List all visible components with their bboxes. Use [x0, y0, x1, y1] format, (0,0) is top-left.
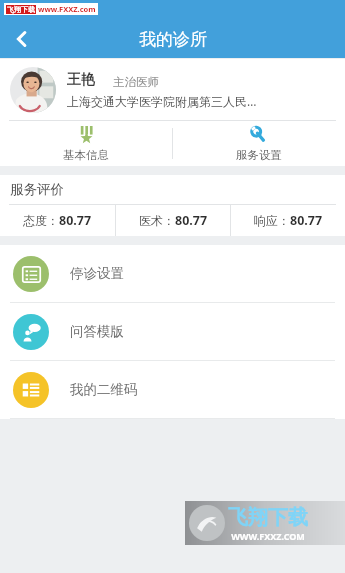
- staticText: 停诊设置: [70, 265, 124, 282]
- staticText: 基本信息: [63, 148, 109, 162]
- staticText: WWW.FXXZ.COM: [231, 530, 305, 542]
- button[interactable]: 服务设置: [173, 121, 345, 166]
- staticText: 80.77: [59, 212, 92, 229]
- staticText: 王艳: [67, 71, 95, 89]
- staticText: 服务设置: [236, 148, 282, 162]
- staticText: www.FXXZ.com: [38, 4, 96, 14]
- staticText: 问答模版: [70, 323, 124, 340]
- staticText: 态度：: [23, 213, 59, 228]
- button[interactable]: 我的二维码: [0, 361, 345, 418]
- staticText: 我的二维码: [70, 381, 138, 398]
- staticText: 我的诊所: [139, 29, 207, 50]
- button[interactable]: 问答模版: [0, 303, 345, 360]
- staticText: 飞翔下载: [7, 5, 35, 14]
- staticText: 主治医师: [113, 75, 159, 89]
- staticText: 服务评价: [10, 181, 64, 198]
- button[interactable]: Back: [0, 20, 44, 58]
- staticText: 响应：: [254, 213, 290, 228]
- staticText: 80.77: [290, 212, 323, 229]
- button[interactable]: 停诊设置: [0, 245, 345, 302]
- staticText: 医术：: [139, 213, 175, 228]
- staticText: 飞翔下载: [228, 505, 308, 530]
- button[interactable]: 王艳: [0, 59, 345, 121]
- staticText: 上海交通大学医学院附属第三人民…: [67, 93, 257, 109]
- staticText: 80.77: [175, 212, 208, 229]
- button[interactable]: 基本信息: [0, 121, 172, 166]
